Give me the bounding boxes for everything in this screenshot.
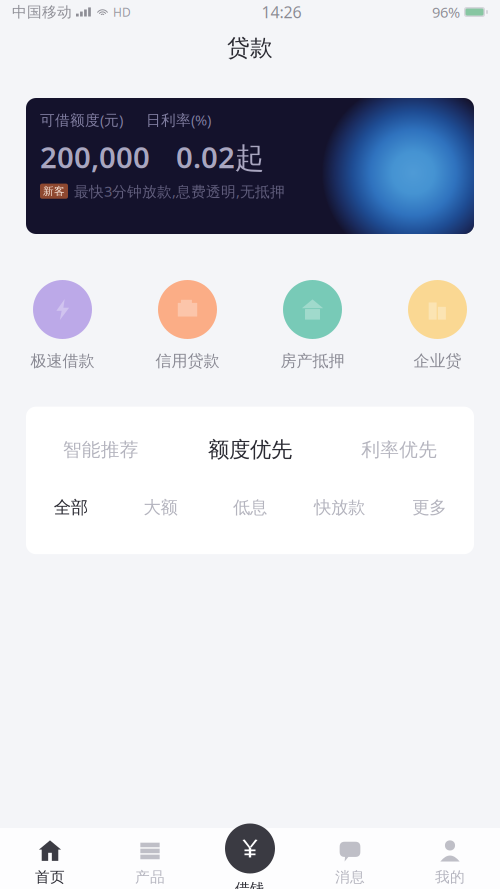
- staticText: 智能推荐: [63, 438, 139, 461]
- staticText: 首页: [35, 868, 65, 886]
- staticText: 额度优先: [208, 437, 292, 463]
- staticText: 我的: [435, 868, 465, 886]
- button[interactable]: 低息: [205, 497, 295, 518]
- button[interactable]: 产品: [100, 831, 200, 886]
- staticText: 200,000: [40, 137, 150, 176]
- staticText: 中国移动: [12, 3, 72, 21]
- staticText: 快放款: [314, 497, 365, 518]
- staticText: 可借额度(元): [40, 110, 123, 129]
- button[interactable]: 我的: [400, 831, 500, 886]
- button[interactable]: 可借额度(元): [0, 72, 500, 234]
- staticText: 借钱: [235, 879, 265, 889]
- button[interactable]: 更多: [384, 497, 474, 518]
- button[interactable]: 利率优先: [325, 438, 474, 461]
- button[interactable]: 快放款: [295, 497, 384, 518]
- staticText: 新客: [43, 185, 65, 198]
- staticText: 全部: [54, 497, 88, 518]
- staticText: 贷款: [227, 34, 273, 62]
- staticText: 14:26: [261, 1, 301, 23]
- staticText: 利率优先: [361, 438, 437, 461]
- staticText: 极速借款: [30, 351, 94, 371]
- staticText: 日利率(%): [146, 110, 211, 129]
- button[interactable]: 额度优先: [175, 437, 325, 463]
- staticText: 低息: [233, 497, 267, 518]
- staticText: 房产抵押: [280, 351, 344, 371]
- staticText: HD: [113, 4, 131, 20]
- staticText: 96%: [432, 2, 460, 22]
- staticText: 信用贷款: [155, 351, 219, 371]
- staticText: 产品: [135, 868, 165, 886]
- staticText: 最快3分钟放款,息费透明,无抵押: [74, 181, 285, 201]
- button[interactable]: 信用贷款: [125, 280, 250, 371]
- staticText: 0.02起: [176, 137, 264, 176]
- button[interactable]: 借钱: [200, 819, 300, 889]
- button[interactable]: 企业贷: [375, 280, 500, 371]
- button[interactable]: 首页: [0, 831, 100, 886]
- button[interactable]: 全部: [26, 497, 116, 518]
- staticText: 更多: [412, 497, 446, 518]
- button[interactable]: 大额: [116, 497, 205, 518]
- staticText: 企业贷: [413, 351, 461, 371]
- button[interactable]: 房产抵押: [250, 280, 375, 371]
- button[interactable]: 极速借款: [0, 280, 125, 371]
- button[interactable]: 消息: [300, 831, 400, 886]
- button[interactable]: 智能推荐: [26, 438, 175, 461]
- staticText: 消息: [335, 868, 365, 886]
- staticText: 大额: [143, 497, 177, 518]
